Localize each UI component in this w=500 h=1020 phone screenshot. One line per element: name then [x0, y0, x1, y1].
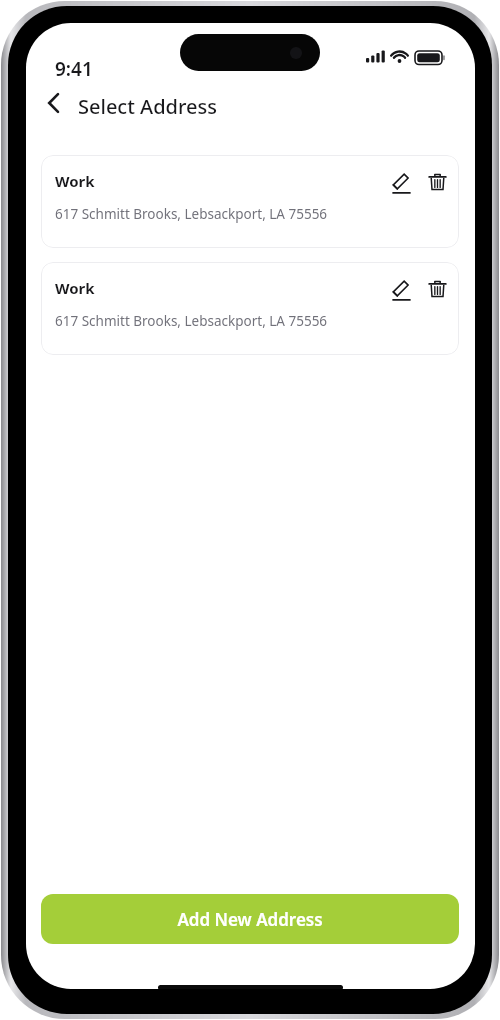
button[interactable]: Work [41, 155, 459, 248]
staticText: 9:41 [55, 56, 93, 82]
button[interactable]: Delete address [421, 272, 453, 304]
button[interactable]: Edit address [385, 165, 417, 197]
button[interactable]: Edit address [385, 272, 417, 304]
staticText: Work [55, 171, 95, 191]
staticText: Work [55, 278, 95, 298]
staticText: 617 Schmitt Brooks, Lebsackport, LA 7555… [55, 312, 328, 330]
button[interactable]: Delete address [421, 165, 453, 197]
button[interactable]: Back [39, 88, 69, 118]
button[interactable]: Work [41, 262, 459, 355]
button[interactable]: Add New Address [41, 894, 459, 944]
staticText: 617 Schmitt Brooks, Lebsackport, LA 7555… [55, 205, 328, 223]
staticText: Add New Address [177, 908, 323, 931]
staticText: Select Address [78, 93, 217, 120]
